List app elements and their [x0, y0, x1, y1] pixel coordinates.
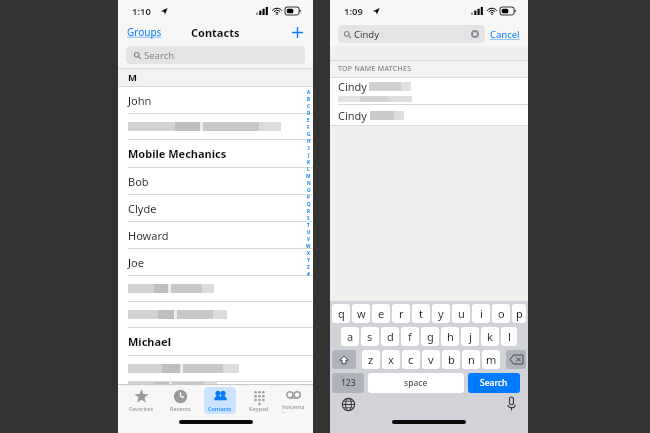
staticText: M: [128, 71, 137, 84]
button[interactable]: v: [422, 350, 440, 369]
staticText: Howard: [128, 228, 169, 243]
staticText: q: [338, 306, 345, 321]
staticText: p: [516, 306, 523, 321]
button[interactable]: Michael: [118, 328, 313, 356]
staticText: Search: [480, 377, 508, 389]
staticText: Bob: [128, 174, 149, 189]
staticText: M: [306, 173, 311, 179]
staticText: Y: [307, 257, 310, 263]
button[interactable]: John: [118, 87, 313, 114]
staticText: c: [408, 352, 414, 367]
staticText: u: [458, 306, 465, 321]
button[interactable]: l: [501, 327, 517, 346]
button[interactable]: j: [461, 327, 479, 346]
button[interactable]: Cindy: [338, 25, 485, 43]
button[interactable]: Joe: [118, 249, 313, 276]
button[interactable]: w: [352, 304, 370, 323]
staticText: f: [408, 329, 412, 344]
staticText: Voicemail: [282, 403, 305, 413]
button[interactable]: Clyde: [118, 195, 313, 222]
staticText: Clyde: [128, 201, 157, 216]
button[interactable]: Groups: [127, 25, 162, 39]
button[interactable]: b: [442, 350, 460, 369]
button[interactable]: Bob: [118, 168, 313, 195]
staticText: l: [508, 329, 511, 344]
button[interactable]: e: [372, 304, 390, 323]
staticText: C: [307, 103, 310, 109]
button[interactable]: Shift: [332, 350, 356, 369]
button[interactable]: o: [492, 304, 510, 323]
button[interactable]: f: [401, 327, 419, 346]
button[interactable]: Howard: [118, 222, 313, 249]
staticText: #: [307, 271, 310, 277]
button[interactable]: Cindy: [330, 105, 528, 126]
staticText: R: [307, 208, 311, 214]
button[interactable]: z: [362, 350, 380, 369]
staticText: N: [307, 180, 311, 186]
button[interactable]: [118, 356, 313, 382]
button[interactable]: Contacts: [200, 387, 239, 414]
staticText: Contacts: [191, 25, 240, 40]
staticText: D: [307, 110, 311, 116]
button[interactable]: u: [452, 304, 470, 323]
staticText: 1:10: [132, 5, 151, 18]
button[interactable]: s: [361, 327, 379, 346]
button[interactable]: x: [382, 350, 400, 369]
button[interactable]: t: [412, 304, 430, 323]
button[interactable]: d: [381, 327, 399, 346]
staticText: Z: [307, 264, 310, 270]
staticText: E: [307, 117, 310, 123]
staticText: h: [447, 329, 454, 344]
button[interactable]: Add contact: [290, 25, 304, 39]
button[interactable]: Cancel: [490, 28, 520, 41]
staticText: Cindy: [338, 79, 367, 94]
staticText: b: [448, 352, 455, 367]
staticText: w: [357, 306, 366, 321]
button[interactable]: Favorites: [122, 387, 161, 414]
staticText: e: [378, 306, 385, 321]
staticText: TOP NAME MATCHES: [338, 64, 412, 74]
button[interactable]: Clear text: [471, 30, 479, 38]
button[interactable]: g: [421, 327, 439, 346]
button[interactable]: [118, 114, 313, 140]
staticText: Keypad: [249, 405, 269, 412]
staticText: Recents: [170, 405, 191, 412]
button[interactable]: y: [432, 304, 450, 323]
button[interactable]: Search: [468, 373, 520, 393]
button[interactable]: Voicemail: [278, 385, 309, 415]
button[interactable]: m: [482, 350, 500, 369]
button[interactable]: n: [462, 350, 480, 369]
button[interactable]: space: [368, 373, 464, 393]
button[interactable]: Keypad: [239, 387, 278, 414]
staticText: Mobile Mechanics: [128, 146, 227, 161]
staticText: Joe: [128, 255, 144, 270]
staticText: z: [368, 352, 374, 367]
staticText: space: [404, 377, 428, 389]
button[interactable]: c: [402, 350, 420, 369]
button[interactable]: i: [472, 304, 490, 323]
button[interactable]: Change keyboard: [342, 398, 355, 411]
staticText: J: [308, 152, 310, 158]
button[interactable]: Dictation: [507, 397, 516, 411]
button[interactable]: a: [341, 327, 359, 346]
staticText: j: [469, 329, 472, 344]
button[interactable]: Search: [126, 46, 305, 64]
staticText: A: [307, 89, 311, 95]
button[interactable]: Cindy: [330, 78, 528, 105]
button[interactable]: Recents: [161, 387, 200, 414]
button[interactable]: Backspace: [506, 350, 526, 369]
staticText: g: [427, 329, 434, 344]
button[interactable]: 123: [332, 373, 364, 393]
button[interactable]: q: [332, 304, 350, 323]
button[interactable]: [118, 382, 313, 384]
button[interactable]: [118, 302, 313, 328]
button[interactable]: [118, 276, 313, 302]
button[interactable]: h: [441, 327, 459, 346]
staticText: y: [438, 306, 444, 321]
staticText: Contacts: [208, 405, 232, 412]
staticText: s: [367, 329, 373, 344]
button[interactable]: r: [392, 304, 410, 323]
button[interactable]: p: [512, 304, 526, 323]
button[interactable]: k: [481, 327, 499, 346]
button[interactable]: Mobile Mechanics: [118, 140, 313, 168]
